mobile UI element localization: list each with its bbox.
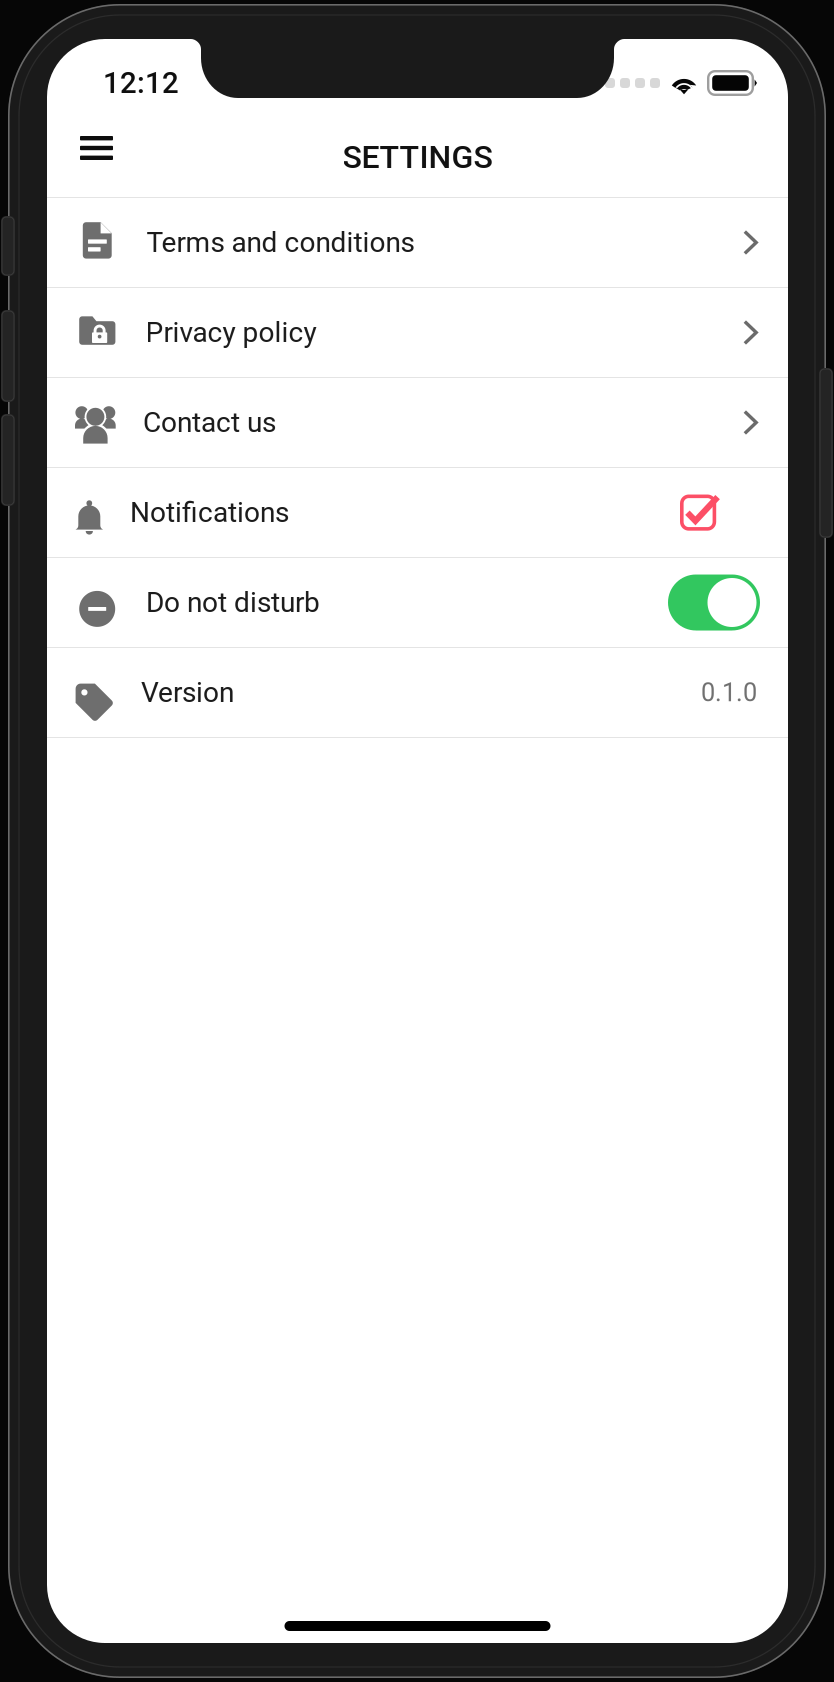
staticText: 0.1.0 [701, 678, 757, 707]
button[interactable]: Do not disturb [47, 558, 788, 647]
staticText: Terms and conditions [146, 226, 414, 259]
staticText: Version [141, 676, 234, 709]
button[interactable]: Terms and conditions [47, 198, 788, 287]
button[interactable]: Privacy policy [47, 288, 788, 377]
button[interactable]: Contact us [47, 378, 788, 467]
staticText: 12:12 [103, 66, 179, 100]
staticText: Notifications [130, 496, 289, 529]
staticText: Privacy policy [146, 316, 317, 349]
button[interactable]: Menu [64, 120, 129, 176]
staticText: Do not disturb [146, 586, 320, 619]
staticText: Contact us [143, 406, 276, 439]
button[interactable]: Version [47, 648, 788, 737]
staticText: SETTINGS [342, 138, 492, 176]
button[interactable]: Notifications [47, 468, 788, 557]
